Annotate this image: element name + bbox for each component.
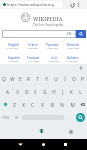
button[interactable]: C	[28, 98, 37, 111]
staticText: ?123	[2, 116, 9, 120]
staticText: 1 983 000+	[47, 47, 59, 50]
staticText: Italiano	[67, 56, 79, 60]
staticText: N	[60, 102, 64, 108]
staticText: M	[70, 102, 75, 108]
staticText: Français	[27, 56, 40, 60]
button[interactable]: W	[8, 72, 16, 85]
button[interactable]: Hide keyboard	[14, 139, 26, 150]
button[interactable]: Keyboard mode	[38, 128, 45, 135]
staticText: Q	[2, 76, 6, 82]
button[interactable]: Shift	[0, 98, 10, 111]
button[interactable]: Home	[37, 139, 49, 150]
button[interactable]: Recent apps	[59, 139, 71, 150]
button[interactable]: L	[76, 85, 85, 98]
staticText: F	[34, 89, 37, 95]
staticText: P	[81, 76, 84, 82]
staticText: R	[27, 76, 30, 82]
button[interactable]: Español	[8, 56, 20, 63]
button[interactable]: K	[67, 85, 76, 98]
button[interactable]: T	[33, 72, 42, 85]
staticText: C	[31, 102, 34, 108]
staticText: G	[43, 89, 47, 95]
staticText: 1 938 000+	[8, 60, 20, 63]
staticText: W	[10, 76, 15, 82]
staticText: https://www.wikipedia.org	[7, 2, 54, 7]
button[interactable]: Settings	[11, 111, 21, 124]
staticText: S	[16, 89, 19, 95]
staticText: 6 748 000+	[7, 47, 19, 50]
button[interactable]: English	[7, 43, 19, 50]
button[interactable]: Reload page	[68, 1, 76, 9]
staticText: 2 617 000+	[28, 60, 40, 63]
staticText: The Free Encyclopedia	[33, 23, 64, 27]
button[interactable]: J	[58, 85, 67, 98]
staticText: J	[62, 89, 64, 95]
button[interactable]: X	[19, 98, 28, 111]
button[interactable]: S	[12, 85, 22, 98]
button[interactable]: Italiano	[67, 56, 79, 63]
button[interactable]: D	[22, 85, 31, 98]
button[interactable]: Backspace	[77, 98, 87, 111]
button[interactable]: Русский	[46, 43, 59, 50]
button[interactable]: EN	[2, 30, 76, 38]
staticText: WIKIPEDIA	[33, 15, 63, 22]
button[interactable]: F	[31, 85, 40, 98]
staticText: EN	[67, 32, 72, 36]
button[interactable]: 日本語	[27, 43, 39, 50]
button[interactable]: O	[69, 72, 78, 85]
button[interactable]: Y	[42, 72, 51, 85]
staticText: 1 852 000+	[67, 60, 79, 63]
button[interactable]: H	[49, 85, 58, 98]
staticText: 中文	[51, 56, 58, 60]
staticText: English	[8, 43, 19, 47]
staticText: B	[51, 102, 54, 108]
button[interactable]: Q	[0, 72, 8, 85]
staticText: D	[25, 89, 29, 95]
staticText: 日本語	[28, 43, 38, 47]
staticText: H	[52, 89, 56, 95]
staticText: T	[36, 76, 39, 82]
staticText: L	[79, 89, 82, 95]
staticText: V	[41, 102, 44, 108]
button[interactable]: Deutsch	[67, 43, 80, 50]
button[interactable]: https://www.wikipedia.org	[1, 1, 63, 8]
staticText: A	[6, 89, 9, 95]
button[interactable]: B	[47, 98, 57, 111]
button[interactable]: Keyboard settings	[67, 128, 74, 135]
staticText: 1 400 000+	[27, 47, 39, 50]
button[interactable]: N	[57, 98, 67, 111]
button[interactable]: M	[67, 98, 77, 111]
button[interactable]: R	[24, 72, 33, 85]
staticText: I	[64, 76, 66, 82]
staticText: O	[72, 76, 76, 82]
button[interactable]: P	[78, 72, 87, 85]
staticText: 2 926 000+	[68, 47, 80, 50]
staticText: Deutsch	[67, 43, 80, 47]
button[interactable]: Voice input	[78, 65, 84, 71]
staticText: Z	[13, 102, 16, 108]
staticText: X	[22, 102, 25, 108]
staticText: Español	[8, 56, 20, 60]
staticText: U	[54, 76, 58, 82]
staticText: K	[70, 89, 73, 95]
button[interactable]: A	[2, 85, 12, 98]
staticText: Русский	[46, 43, 59, 47]
button[interactable]: Français	[27, 56, 40, 63]
staticText: Y	[45, 76, 48, 82]
button[interactable]: I	[60, 72, 69, 85]
button[interactable]: More options	[75, 1, 82, 8]
button[interactable]: E	[16, 72, 24, 85]
button[interactable]: Z	[10, 98, 19, 111]
button[interactable]: Search	[76, 113, 85, 122]
button[interactable]: U	[51, 72, 60, 85]
button[interactable]: ?123	[0, 111, 11, 124]
button[interactable]: 中文	[48, 56, 60, 63]
staticText: 1 396 000+	[48, 60, 60, 63]
button[interactable]: G	[40, 85, 49, 98]
staticText: E	[19, 76, 22, 82]
button[interactable]: V	[37, 98, 47, 111]
staticText: .	[68, 115, 70, 120]
button[interactable]: Search	[76, 30, 86, 38]
